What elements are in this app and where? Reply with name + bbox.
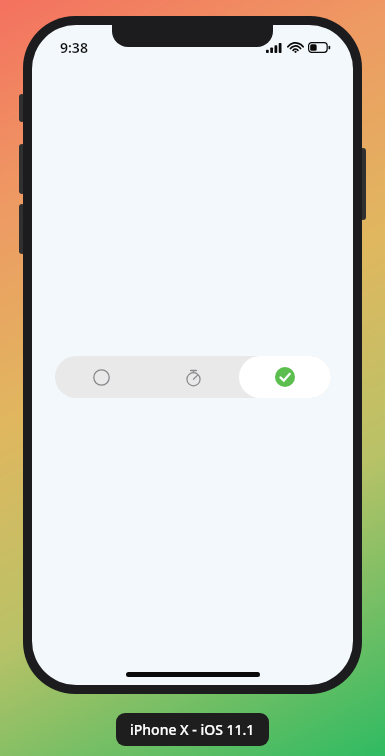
staticText: iPhone X - iOS 11.1 [130,720,255,739]
staticText: 9:38 [60,38,88,57]
button[interactable]: Completed [239,356,331,398]
button[interactable]: iPhone X - iOS 11.1 [116,713,269,746]
button[interactable]: Not started [55,356,147,398]
button[interactable]: In progress [147,356,239,398]
